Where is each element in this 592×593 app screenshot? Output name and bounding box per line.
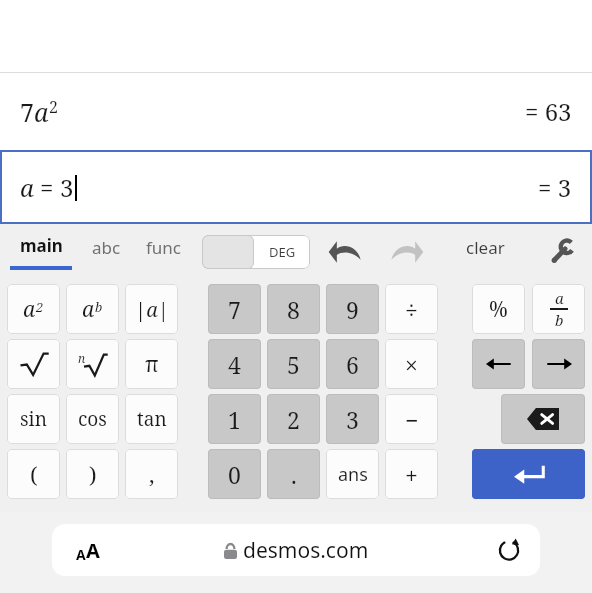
button[interactable]: Move right bbox=[532, 339, 585, 389]
staticText: 2 bbox=[36, 298, 44, 316]
button[interactable]: 7 bbox=[208, 284, 261, 334]
button[interactable]: ) bbox=[66, 449, 119, 499]
staticText: A bbox=[86, 537, 100, 564]
staticText: = bbox=[40, 171, 54, 204]
button[interactable]: 1 bbox=[208, 394, 261, 444]
staticText: n bbox=[78, 350, 86, 366]
staticText: 7 bbox=[20, 95, 34, 129]
staticText: b bbox=[555, 310, 564, 330]
staticText: main bbox=[20, 234, 63, 257]
staticText: A bbox=[76, 545, 86, 564]
staticText: = 63 bbox=[525, 95, 572, 128]
staticText: clear bbox=[466, 236, 505, 259]
button[interactable]: Move left bbox=[472, 339, 525, 389]
button[interactable]: cos bbox=[66, 394, 119, 444]
button[interactable]: ÷ bbox=[385, 284, 438, 334]
staticText: b bbox=[95, 298, 103, 316]
staticText: 5 bbox=[287, 349, 300, 380]
staticText: abc bbox=[92, 236, 121, 259]
button[interactable]: tan bbox=[125, 394, 178, 444]
button[interactable]: pi bbox=[125, 339, 178, 389]
button[interactable]: 4 bbox=[208, 339, 261, 389]
button[interactable]: , bbox=[125, 449, 178, 499]
button[interactable]: 6 bbox=[326, 339, 379, 389]
staticText: a bbox=[34, 95, 49, 129]
staticText: a bbox=[82, 295, 95, 324]
button[interactable]: Redo bbox=[384, 234, 430, 270]
staticText: − bbox=[405, 404, 419, 435]
staticText: desmos.com bbox=[243, 536, 369, 565]
button[interactable]: Page settings bbox=[62, 528, 114, 572]
button[interactable]: + bbox=[385, 449, 438, 499]
button[interactable]: sqrt bbox=[7, 339, 60, 389]
button[interactable]: × bbox=[385, 339, 438, 389]
button[interactable]: 7 bbox=[0, 73, 592, 150]
staticText: tan bbox=[137, 406, 167, 432]
staticText: 2 bbox=[287, 404, 300, 435]
button[interactable]: sin bbox=[7, 394, 60, 444]
staticText: 8 bbox=[287, 294, 300, 325]
staticText: 1 bbox=[228, 404, 241, 435]
staticText: 0 bbox=[228, 459, 241, 490]
staticText: |a| bbox=[135, 296, 169, 323]
button[interactable]: 2 bbox=[267, 394, 320, 444]
staticText: % bbox=[489, 295, 508, 324]
button[interactable]: func bbox=[138, 224, 190, 270]
button[interactable]: . bbox=[267, 449, 320, 499]
button[interactable]: Settings bbox=[542, 234, 582, 270]
staticText: 6 bbox=[346, 349, 359, 380]
staticText: = 3 bbox=[538, 171, 572, 204]
button[interactable]: nsqrt bbox=[66, 339, 119, 389]
staticText: + bbox=[405, 459, 418, 490]
button[interactable]: 8 bbox=[267, 284, 320, 334]
staticText: ÷ bbox=[405, 294, 418, 325]
staticText: func bbox=[146, 236, 182, 259]
button[interactable]: a bbox=[0, 150, 592, 224]
button[interactable]: ( bbox=[7, 449, 60, 499]
staticText: a bbox=[20, 171, 34, 204]
staticText: ) bbox=[89, 459, 97, 489]
button[interactable]: percent bbox=[472, 284, 525, 334]
staticText: ( bbox=[30, 459, 38, 489]
button[interactable]: ans bbox=[326, 449, 379, 499]
button[interactable]: a2 bbox=[7, 284, 60, 334]
button[interactable]: Toggle degrees radians bbox=[202, 235, 310, 269]
staticText: 3 bbox=[346, 404, 359, 435]
staticText: . bbox=[291, 459, 297, 490]
button[interactable]: − bbox=[385, 394, 438, 444]
button[interactable]: fraction bbox=[532, 284, 585, 334]
button[interactable]: clear bbox=[452, 224, 518, 270]
button[interactable]: Backspace bbox=[501, 394, 585, 444]
staticText: , bbox=[149, 459, 155, 489]
button[interactable]: |a| bbox=[125, 284, 178, 334]
staticText: a bbox=[555, 288, 564, 308]
button[interactable]: Page settings bbox=[52, 524, 540, 576]
button[interactable]: Undo bbox=[322, 234, 368, 270]
button[interactable]: 3 bbox=[326, 394, 379, 444]
button[interactable]: ab bbox=[66, 284, 119, 334]
staticText: ans bbox=[338, 462, 368, 487]
button[interactable]: 0 bbox=[208, 449, 261, 499]
staticText: 4 bbox=[228, 349, 241, 380]
button[interactable]: Enter bbox=[472, 449, 585, 499]
staticText: a bbox=[23, 295, 36, 324]
staticText: × bbox=[405, 349, 418, 380]
button[interactable]: 9 bbox=[326, 284, 379, 334]
button[interactable]: Reload bbox=[488, 529, 530, 571]
button[interactable]: abc bbox=[82, 224, 130, 270]
staticText: sin bbox=[20, 406, 47, 432]
staticText: DEG bbox=[269, 243, 296, 261]
staticText: 9 bbox=[346, 294, 359, 325]
staticText: 7 bbox=[228, 294, 241, 325]
staticText: π bbox=[145, 350, 159, 379]
staticText: 2 bbox=[49, 96, 58, 118]
button[interactable]: 5 bbox=[267, 339, 320, 389]
staticText: cos bbox=[78, 406, 107, 432]
staticText: 3 bbox=[60, 171, 74, 204]
button[interactable]: main bbox=[10, 224, 72, 280]
